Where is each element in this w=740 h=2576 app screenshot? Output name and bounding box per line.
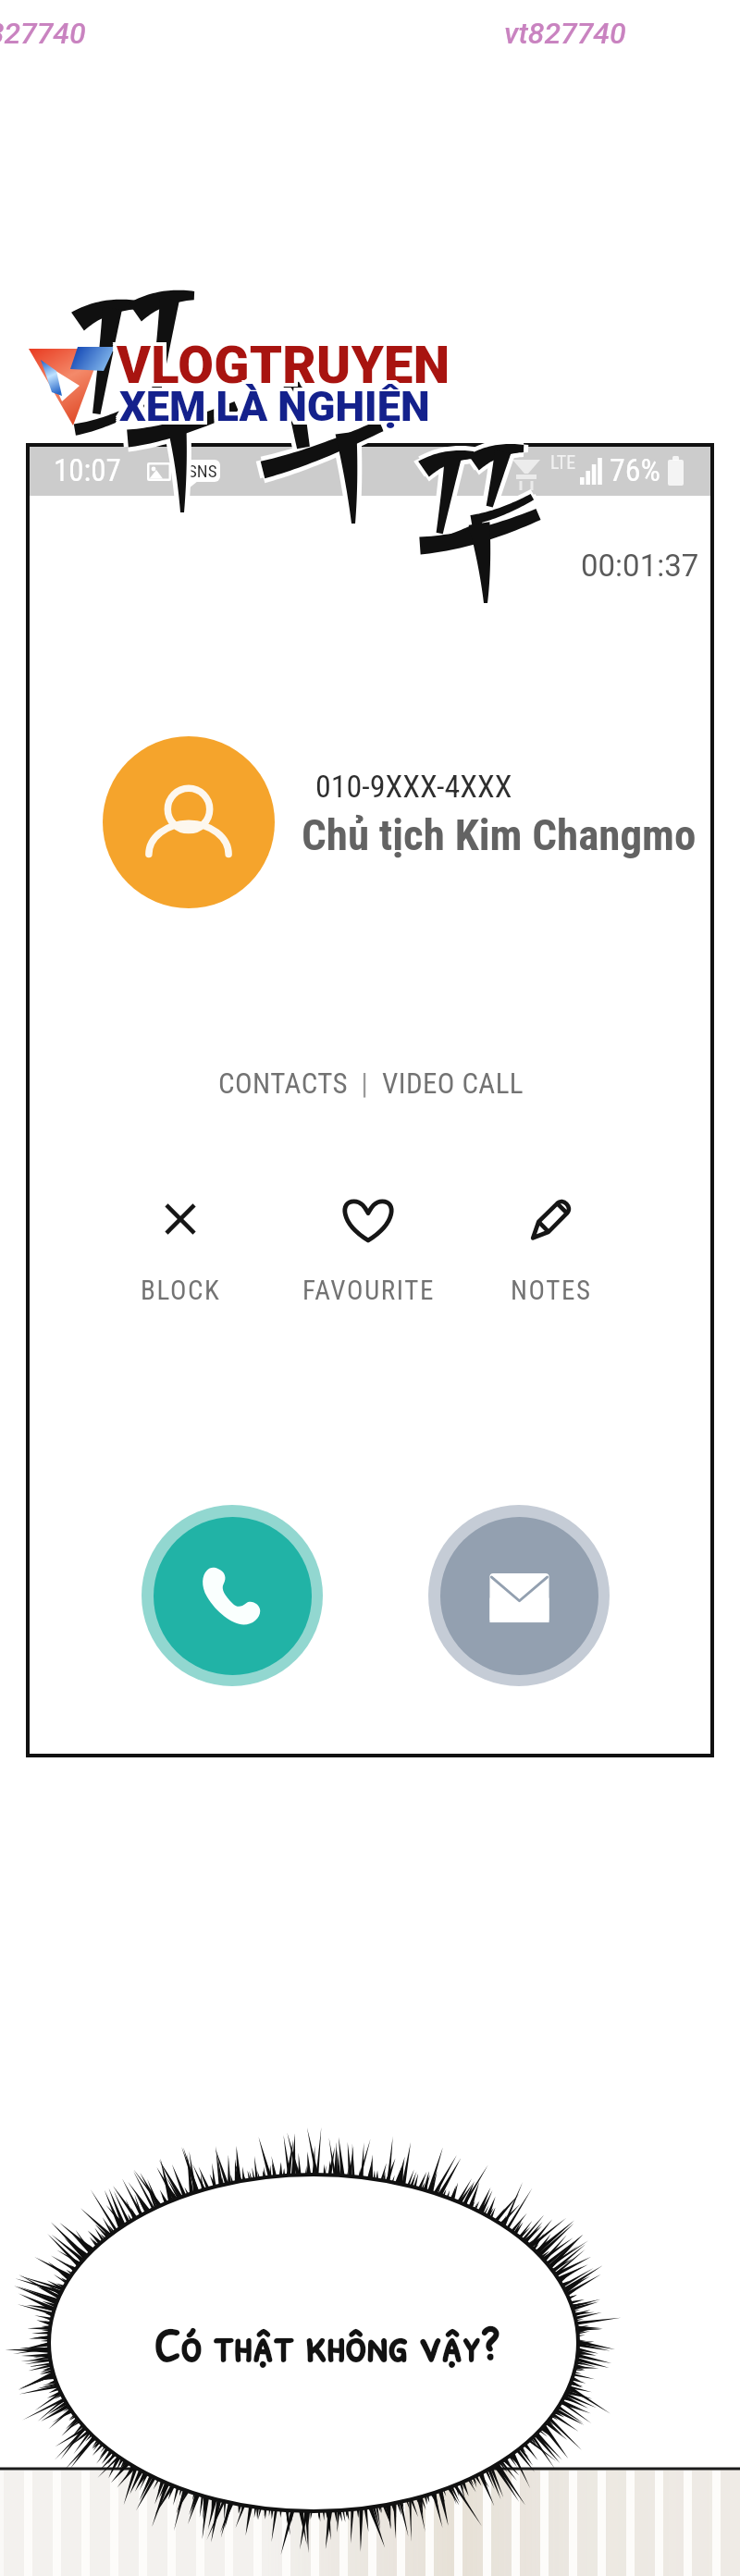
- button[interactable]: BLOCK: [97, 1189, 264, 1306]
- staticText: 010-9XXX-4XXX: [315, 768, 512, 805]
- staticText: VLOGTRUYEN: [115, 333, 449, 394]
- staticText: VLOGTRUYEN: [118, 331, 452, 392]
- staticText: LTE: [550, 451, 576, 473]
- staticText: VLOGTRUYEN: [118, 335, 452, 396]
- staticText: XEM LÀ NGHIỆN: [119, 378, 430, 427]
- staticText: XEM LÀ NGHIỆN: [117, 386, 428, 435]
- button[interactable]: VIDEO CALL: [382, 1066, 524, 1100]
- staticText: XEM LÀ NGHIỆN: [117, 380, 428, 429]
- staticText: VLOGTRUYEN: [117, 333, 450, 394]
- staticText: XEM LÀ NGHIỆN: [121, 378, 432, 427]
- staticText: XEM LÀ NGHIỆN: [117, 382, 428, 431]
- staticText: Có thật không vậy?: [154, 2312, 499, 2377]
- staticText: XEM LÀ NGHIỆN: [117, 384, 428, 433]
- staticText: VLOGTRUYEN: [115, 335, 449, 396]
- staticText: XEM LÀ NGHIỆN: [116, 378, 426, 427]
- staticText: XEM LÀ NGHIỆN: [119, 384, 430, 433]
- button[interactable]: NOTES: [468, 1189, 635, 1306]
- staticText: VLOGTRUYEN: [118, 339, 452, 400]
- staticText: vt827740: [504, 16, 626, 51]
- staticText: 00:01:37: [581, 548, 699, 584]
- staticText: XEM LÀ NGHIỆN: [119, 386, 430, 435]
- staticText: XEM LÀ NGHIỆN: [121, 384, 432, 433]
- staticText: VLOGTRUYEN: [117, 335, 450, 396]
- staticText: VLOGTRUYEN: [117, 337, 450, 398]
- staticText: VLOGTRUYEN: [120, 333, 454, 394]
- staticText: VLOGTRUYEN: [115, 337, 449, 398]
- staticText: XEM LÀ NGHIỆN: [117, 378, 428, 427]
- staticText: VLOGTRUYEN: [120, 331, 454, 392]
- staticText: 10:07: [54, 452, 121, 488]
- button[interactable]: CONTACTS: [218, 1066, 348, 1100]
- staticText: XEM LÀ NGHIỆN: [116, 384, 426, 433]
- staticText: VLOGTRUYEN: [113, 335, 447, 396]
- staticText: VLOGTRUYEN: [120, 335, 454, 396]
- staticText: VLOGTRUYEN: [118, 337, 452, 398]
- staticText: BLOCK: [141, 1275, 221, 1306]
- staticText: VLOGTRUYEN: [113, 337, 447, 398]
- staticText: VLOGTRUYEN: [113, 333, 447, 394]
- staticText: |: [348, 1066, 382, 1100]
- staticText: VLOGTRUYEN: [120, 337, 454, 398]
- staticText: VLOGTRUYEN: [120, 339, 454, 400]
- staticText: XEM LÀ NGHIỆN: [121, 382, 432, 431]
- button[interactable]: FAVOURITE: [285, 1189, 451, 1306]
- staticText: XEM LÀ NGHIỆN: [119, 380, 430, 429]
- button[interactable]: Message: [428, 1505, 610, 1686]
- staticText: XEM LÀ NGHIỆN: [116, 380, 426, 429]
- staticText: VLOGTRUYEN: [113, 339, 447, 400]
- staticText: VLOGTRUYEN: [115, 339, 449, 400]
- staticText: vt827740: [0, 16, 86, 51]
- staticText: XEM LÀ NGHIỆN: [121, 386, 432, 435]
- button[interactable]: Call: [142, 1505, 323, 1686]
- staticText: SNS: [188, 461, 217, 481]
- staticText: Chủ tịch Kim Changmo: [302, 809, 697, 860]
- staticText: VLOGTRUYEN: [113, 331, 447, 392]
- staticText: VLOGTRUYEN: [115, 331, 449, 392]
- staticText: XEM LÀ NGHIỆN: [123, 378, 434, 427]
- staticText: VLOGTRUYEN: [117, 339, 450, 400]
- staticText: XEM LÀ NGHIỆN: [123, 384, 434, 433]
- staticText: XEM LÀ NGHIỆN: [123, 386, 434, 435]
- staticText: VLOGTRUYEN: [117, 331, 450, 392]
- staticText: XEM LÀ NGHIỆN: [121, 380, 432, 429]
- staticText: XEM LÀ NGHIỆN: [119, 382, 430, 431]
- staticText: XEM LÀ NGHIỆN: [116, 386, 426, 435]
- staticText: FAVOURITE: [302, 1275, 435, 1306]
- staticText: XEM LÀ NGHIỆN: [123, 380, 434, 429]
- staticText: VLOGTRUYEN: [118, 333, 452, 394]
- staticText: XEM LÀ NGHIỆN: [116, 382, 426, 431]
- staticText: 76%: [610, 451, 661, 488]
- staticText: NOTES: [511, 1275, 592, 1306]
- staticText: XEM LÀ NGHIỆN: [123, 382, 434, 431]
